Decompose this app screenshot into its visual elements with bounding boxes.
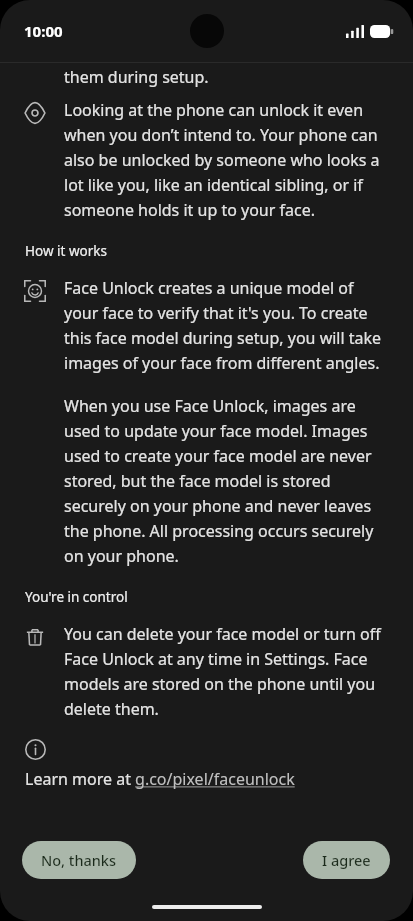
other: Information [25, 739, 46, 760]
staticText: I agree [322, 850, 371, 870]
button[interactable]: Learn more at g.co/pixel/faceunlock [25, 768, 295, 790]
staticText: 10:00 [24, 21, 63, 41]
staticText: Looking at the phone can unlock it even … [64, 99, 391, 220]
other: Visibility [24, 102, 46, 124]
other: Delete [24, 626, 46, 648]
staticText: When you use Face Unlock, images are use… [64, 395, 391, 566]
staticText: You're in control [25, 588, 128, 606]
other: Face model [24, 280, 46, 302]
staticText: Face Unlock creates a unique model of yo… [64, 277, 391, 373]
staticText: them during setup. [64, 66, 209, 88]
staticText: Learn more at g.co/pixel/faceunlock [25, 768, 295, 790]
button[interactable]: I agree [303, 841, 390, 879]
staticText: You can delete your face model or turn o… [64, 623, 391, 719]
staticText: How it works [25, 242, 107, 260]
staticText: No, thanks [41, 850, 117, 870]
button[interactable]: No, thanks [22, 841, 136, 879]
